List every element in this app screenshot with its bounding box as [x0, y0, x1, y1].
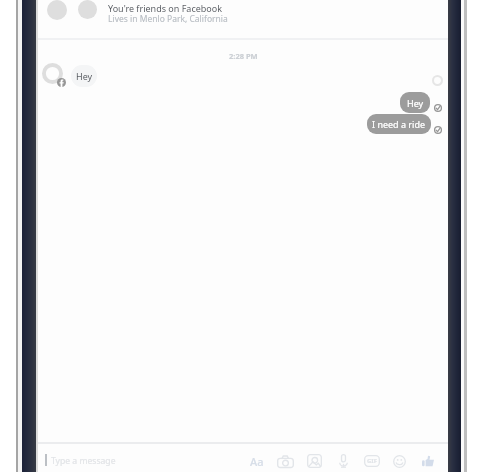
staticText: Lives in Menlo Park, California [108, 13, 228, 25]
staticText: Aa [250, 454, 264, 469]
button[interactable]: Hey [400, 92, 430, 113]
staticText: I need a ride [372, 118, 426, 130]
staticText: GIF [367, 457, 377, 465]
button[interactable]: Photos [301, 451, 327, 471]
staticText: Hey [407, 97, 424, 109]
staticText: Hey [76, 70, 93, 82]
button[interactable]: Send a GIF [359, 451, 385, 471]
button[interactable]: Stickers [386, 451, 412, 471]
staticText: 2:28 PM [229, 51, 258, 61]
button[interactable]: I need a ride [367, 114, 431, 134]
staticText: You're friends on Facebook [108, 2, 223, 14]
button[interactable]: Voice message [330, 451, 356, 471]
staticText: Type a message [51, 455, 116, 467]
button[interactable]: Camera [272, 451, 298, 471]
button[interactable]: Send a like [415, 451, 441, 471]
button[interactable]: Hey [71, 65, 97, 87]
button[interactable]: Text formatting [244, 451, 270, 471]
